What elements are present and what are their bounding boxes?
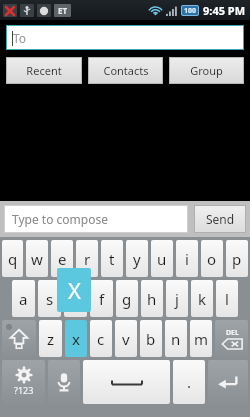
button[interactable]: Voice input (48, 360, 80, 404)
button[interactable]: Shift (2, 320, 36, 357)
button[interactable]: l (216, 280, 238, 317)
staticText: y (133, 249, 141, 269)
staticText: c (97, 329, 105, 349)
staticText: To (13, 30, 27, 46)
staticText: n (171, 329, 181, 349)
staticText: Group (190, 63, 223, 78)
staticText: o (207, 249, 217, 269)
button[interactable]: Enter (208, 360, 248, 404)
staticText: i (185, 249, 189, 269)
button[interactable]: Space (83, 360, 170, 404)
staticText: g (122, 289, 132, 309)
button[interactable]: p (226, 240, 248, 277)
button[interactable]: . (173, 360, 205, 404)
button[interactable]: d (64, 280, 87, 317)
staticText: v (122, 329, 130, 349)
button[interactable]: g (116, 280, 138, 317)
staticText: Type to compose (12, 211, 108, 227)
button[interactable]: y (126, 240, 148, 277)
button[interactable]: o (201, 240, 223, 277)
button[interactable]: j (166, 280, 188, 317)
staticText: h (147, 289, 157, 309)
staticText: 100 (184, 6, 197, 16)
button[interactable]: Delete (215, 320, 248, 357)
button[interactable]: u (151, 240, 173, 277)
button[interactable]: Contacts (88, 57, 163, 84)
button[interactable]: t (101, 240, 123, 277)
staticText: a (19, 289, 28, 309)
staticText: t (109, 249, 115, 269)
button[interactable]: h (141, 280, 163, 317)
button[interactable]: Recent (6, 57, 82, 84)
button[interactable]: Group (169, 57, 244, 84)
button[interactable]: r (76, 240, 98, 277)
staticText: b (146, 329, 156, 349)
staticText: Send (206, 211, 235, 227)
staticText: Recent (26, 63, 62, 78)
staticText: l (225, 289, 229, 309)
staticText: s (46, 289, 54, 309)
staticText: X (68, 275, 81, 305)
staticText: ET (58, 5, 68, 16)
button[interactable]: c (90, 320, 112, 357)
staticText: q (8, 249, 18, 269)
button[interactable]: m (190, 320, 212, 357)
staticText: z (47, 329, 55, 349)
button[interactable]: a (12, 280, 35, 317)
staticText: m (194, 329, 209, 349)
button[interactable]: Send (194, 205, 246, 233)
button[interactable]: n (165, 320, 187, 357)
button[interactable]: x (65, 320, 87, 357)
staticText: ?123 (14, 384, 34, 396)
staticText: r (84, 249, 91, 269)
staticText: d (71, 289, 81, 309)
button[interactable]: z (39, 320, 62, 357)
staticText: p (232, 249, 242, 269)
staticText: . (187, 372, 192, 392)
staticText: u (157, 249, 167, 269)
button[interactable]: w (26, 240, 48, 277)
button[interactable]: Symbols (2, 360, 45, 404)
staticText: j (175, 289, 179, 309)
button[interactable]: i (176, 240, 198, 277)
button[interactable]: f (90, 280, 113, 317)
button[interactable]: e (51, 240, 73, 277)
staticText: 9:45 PM (203, 3, 246, 18)
button[interactable]: q (2, 240, 23, 277)
button[interactable]: v (115, 320, 137, 357)
button[interactable]: Type to compose (4, 205, 188, 233)
staticText: f (99, 289, 105, 309)
staticText: e (58, 249, 67, 269)
button[interactable]: k (191, 280, 213, 317)
button[interactable]: b (140, 320, 162, 357)
button[interactable]: To (6, 25, 244, 50)
staticText: x (72, 329, 80, 349)
staticText: DEL (226, 328, 239, 338)
staticText: k (198, 289, 207, 309)
staticText: w (31, 249, 43, 269)
staticText: Contacts (103, 63, 149, 78)
button[interactable]: s (38, 280, 61, 317)
